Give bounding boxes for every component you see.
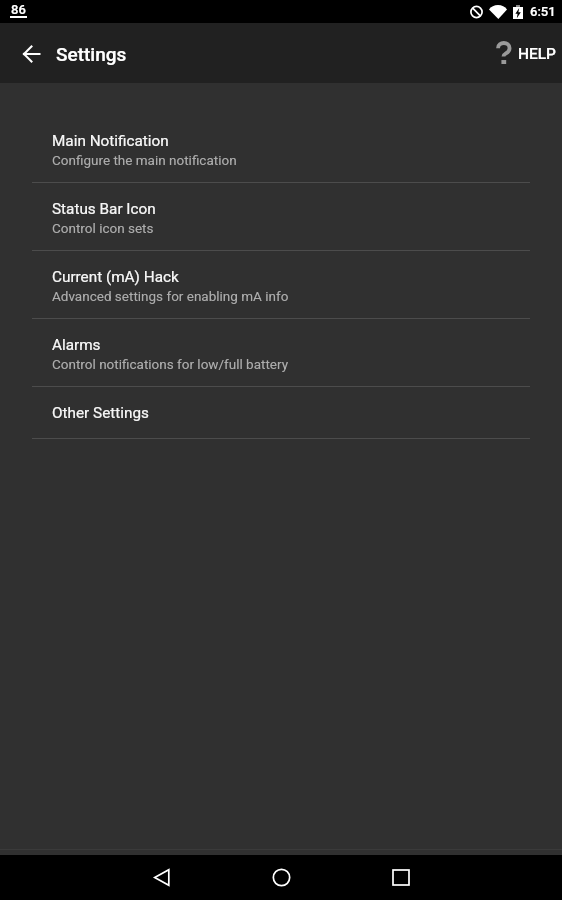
staticText: Configure the main notification: [52, 152, 237, 168]
staticText: Current (mA) Hack: [52, 268, 179, 286]
button[interactable]: Back: [101, 855, 221, 900]
staticText: 6:51: [530, 4, 556, 19]
staticText: 86: [11, 2, 26, 17]
staticText: Status Bar Icon: [52, 200, 156, 218]
staticText: Control icon sets: [52, 220, 154, 236]
button[interactable]: Main Notification: [0, 115, 562, 183]
button[interactable]: Home: [221, 855, 341, 900]
button[interactable]: HELP: [483, 23, 562, 83]
staticText: Alarms: [52, 336, 101, 354]
button[interactable]: Other Settings: [0, 387, 562, 439]
staticText: Settings: [56, 43, 127, 65]
button[interactable]: Navigate up: [0, 23, 56, 83]
staticText: Advanced settings for enabling mA info: [52, 288, 289, 304]
staticText: HELP: [518, 45, 557, 63]
staticText: Other Settings: [52, 404, 149, 422]
button[interactable]: Recent apps: [341, 855, 461, 900]
staticText: Main Notification: [52, 132, 169, 150]
button[interactable]: Alarms: [0, 319, 562, 387]
button[interactable]: Status Bar Icon: [0, 183, 562, 251]
staticText: Control notifications for low/full batte…: [52, 356, 289, 372]
button[interactable]: Current (mA) Hack: [0, 251, 562, 319]
